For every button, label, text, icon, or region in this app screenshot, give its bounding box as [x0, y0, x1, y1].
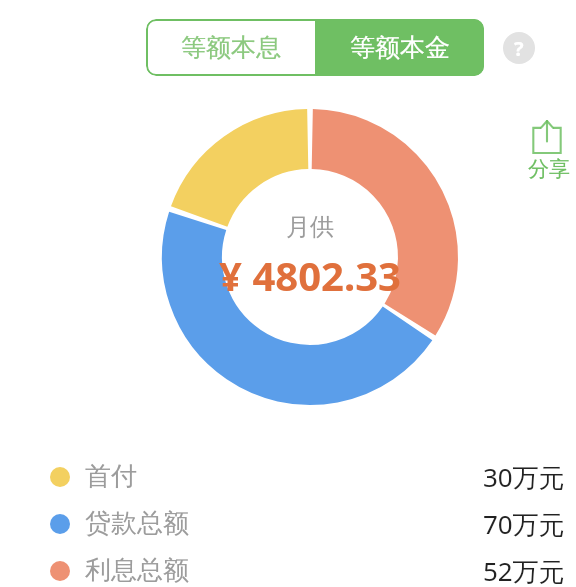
button[interactable]: 首付	[0, 453, 576, 500]
staticText: 52万元	[483, 553, 565, 587]
button[interactable]: 贷款总额	[0, 500, 576, 547]
staticText: 30万元	[483, 459, 565, 495]
staticText: ¥ 4802.33	[219, 248, 401, 302]
button[interactable]: 等额本金	[315, 19, 484, 76]
staticText: 等额本金	[350, 32, 450, 63]
button[interactable]: 等额本息	[146, 19, 315, 76]
staticText: 月供	[286, 212, 334, 242]
button[interactable]: 帮助	[503, 32, 535, 64]
staticText: ?	[514, 35, 524, 62]
staticText: 首付	[85, 460, 137, 493]
staticText: 贷款总额	[85, 507, 189, 540]
staticText: 70万元	[483, 506, 565, 542]
button[interactable]: 利息总额	[0, 547, 576, 587]
staticText: 利息总额	[85, 554, 189, 587]
staticText: 等额本息	[181, 32, 281, 63]
button[interactable]: 分享	[528, 118, 576, 182]
staticText: 分享	[528, 156, 570, 182]
